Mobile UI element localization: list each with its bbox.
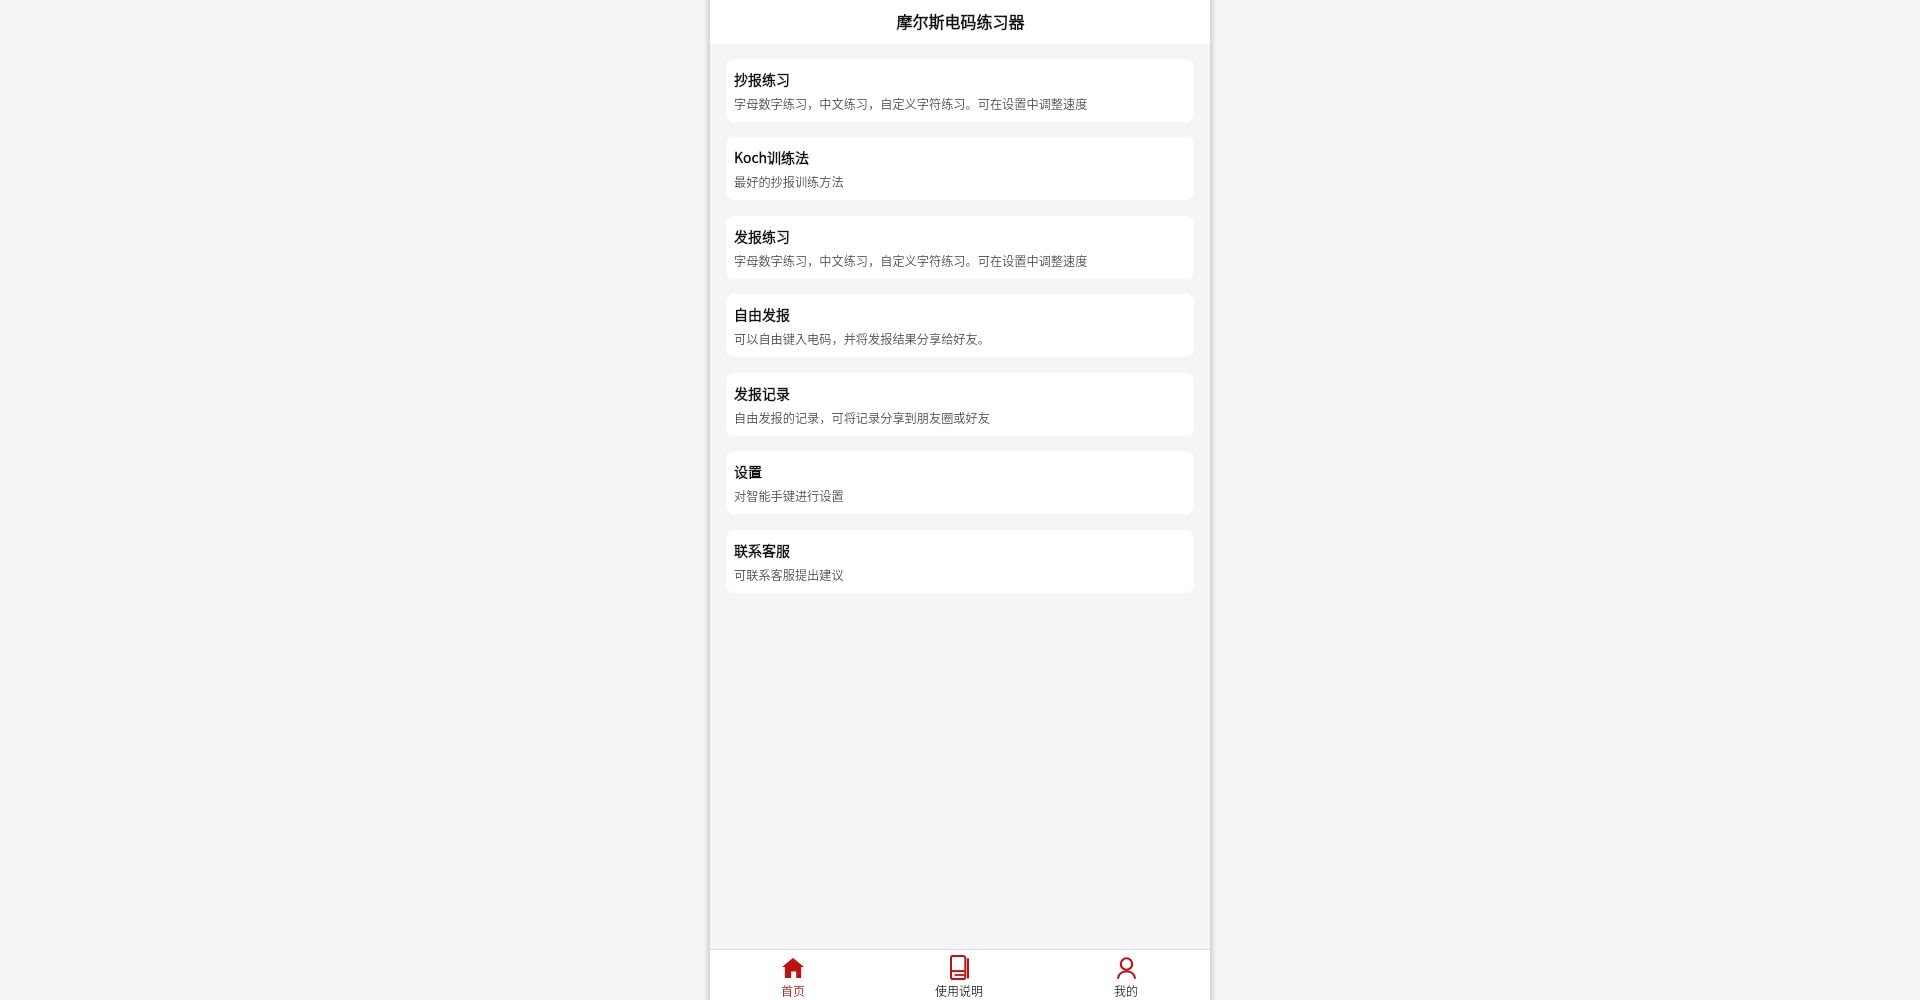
staticText: 设置 bbox=[734, 461, 762, 481]
button[interactable]: 抄报练习 bbox=[726, 59, 1194, 122]
staticText: 字母数字练习，中文练习，自定义字符练习。可在设置中调整速度 bbox=[734, 95, 1088, 113]
button[interactable]: 发报记录 bbox=[726, 373, 1194, 436]
staticText: 对智能手键进行设置 bbox=[734, 487, 844, 505]
button[interactable]: 联系客服 bbox=[726, 530, 1194, 593]
other: 我的 bbox=[1117, 958, 1136, 978]
button[interactable]: 我的 bbox=[1043, 950, 1210, 1000]
staticText: 使用说明 bbox=[935, 982, 984, 999]
staticText: 发报记录 bbox=[734, 383, 790, 403]
staticText: 可联系客服提出建议 bbox=[734, 566, 844, 584]
staticText: 自由发报 bbox=[734, 304, 790, 324]
button[interactable]: 使用说明 bbox=[876, 950, 1043, 1000]
button[interactable]: 首页 bbox=[710, 950, 876, 1000]
staticText: 我的 bbox=[1114, 982, 1139, 999]
staticText: 自由发报的记录，可将记录分享到朋友圈或好友 bbox=[734, 409, 990, 427]
button[interactable]: 发报练习 bbox=[726, 216, 1194, 279]
staticText: 最好的抄报训练方法 bbox=[734, 173, 844, 191]
button[interactable]: 设置 bbox=[726, 451, 1194, 514]
staticText: 抄报练习 bbox=[734, 69, 790, 89]
staticText: 首页 bbox=[781, 982, 806, 999]
staticText: 摩尔斯电码练习器 bbox=[896, 9, 1025, 32]
staticText: 发报练习 bbox=[734, 226, 790, 246]
other: 首页 bbox=[782, 958, 804, 978]
staticText: Koch训练法 bbox=[734, 147, 810, 167]
button[interactable]: 自由发报 bbox=[726, 294, 1194, 357]
button[interactable]: Koch训练法 bbox=[726, 137, 1194, 200]
staticText: 联系客服 bbox=[734, 540, 790, 560]
staticText: 可以自由键入电码，并将发报结果分享给好友。 bbox=[734, 330, 990, 348]
staticText: 字母数字练习，中文练习，自定义字符练习。可在设置中调整速度 bbox=[734, 252, 1088, 270]
other: 使用说明 bbox=[950, 955, 969, 980]
